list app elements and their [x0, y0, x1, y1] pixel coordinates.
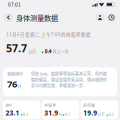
button[interactable]: 历史记录	[107, 13, 116, 22]
staticText: 0.7	[65, 112, 70, 117]
staticText: 肌肉量	[83, 102, 95, 108]
button[interactable]: 个人资料	[95, 13, 104, 22]
staticText: 分	[17, 84, 21, 89]
staticText: 0.1	[109, 112, 114, 117]
staticText: 23.1	[5, 108, 19, 117]
staticText: 0.2	[23, 112, 28, 117]
staticText: 11月6日星期二 上午7:00的体脂秤数据	[6, 31, 91, 38]
staticText: 31.9	[44, 108, 58, 117]
button[interactable]: 体脂率	[42, 100, 79, 119]
staticText: %	[59, 112, 62, 117]
staticText: BMI	[5, 102, 11, 108]
button[interactable]: 返回	[4, 13, 13, 22]
staticText: 19.9	[83, 108, 97, 117]
staticText: 较上一次	[52, 49, 68, 54]
staticText: 体脂率	[44, 102, 56, 108]
staticText: 57.7	[6, 41, 27, 55]
staticText: 公斤	[97, 112, 105, 117]
button[interactable]: 肌肉量	[81, 100, 118, 119]
staticText: 公斤	[28, 48, 36, 54]
staticText: 身体得分	[7, 71, 23, 77]
staticText: 76	[7, 78, 17, 90]
staticText: 您的 BMI、脂肪率等指标基本正常，但内脏脂肪偏高，建议加强有氧运动，保持规律作…	[31, 71, 107, 89]
button[interactable]: BMI	[3, 100, 40, 119]
staticText: 07:01	[8, 1, 21, 8]
staticText: 0.4	[45, 48, 52, 55]
staticText: 身体测量数据	[16, 12, 58, 23]
